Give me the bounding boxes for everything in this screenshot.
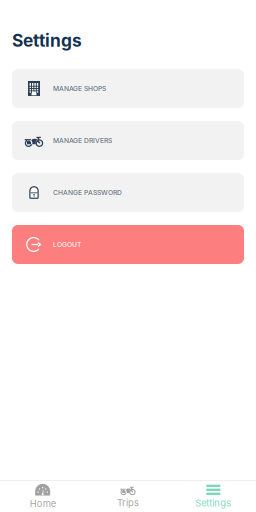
staticText: MANAGE DRIVERS bbox=[53, 136, 112, 144]
button[interactable]: Home bbox=[0, 481, 85, 512]
staticText: Trips bbox=[117, 497, 139, 508]
button[interactable]: Trips bbox=[85, 481, 171, 512]
button[interactable]: LOGOUT bbox=[12, 225, 244, 264]
button[interactable]: MANAGE DRIVERS bbox=[12, 121, 244, 160]
button[interactable]: Settings bbox=[171, 481, 256, 512]
staticText: CHANGE PASSWORD bbox=[53, 188, 122, 196]
staticText: Settings bbox=[195, 497, 231, 509]
button[interactable]: MANAGE SHOPS bbox=[12, 69, 244, 108]
button[interactable]: CHANGE PASSWORD bbox=[12, 173, 244, 212]
staticText: Settings bbox=[12, 30, 82, 51]
staticText: MANAGE SHOPS bbox=[53, 84, 106, 92]
staticText: Home bbox=[30, 498, 56, 509]
staticText: LOGOUT bbox=[53, 240, 81, 248]
